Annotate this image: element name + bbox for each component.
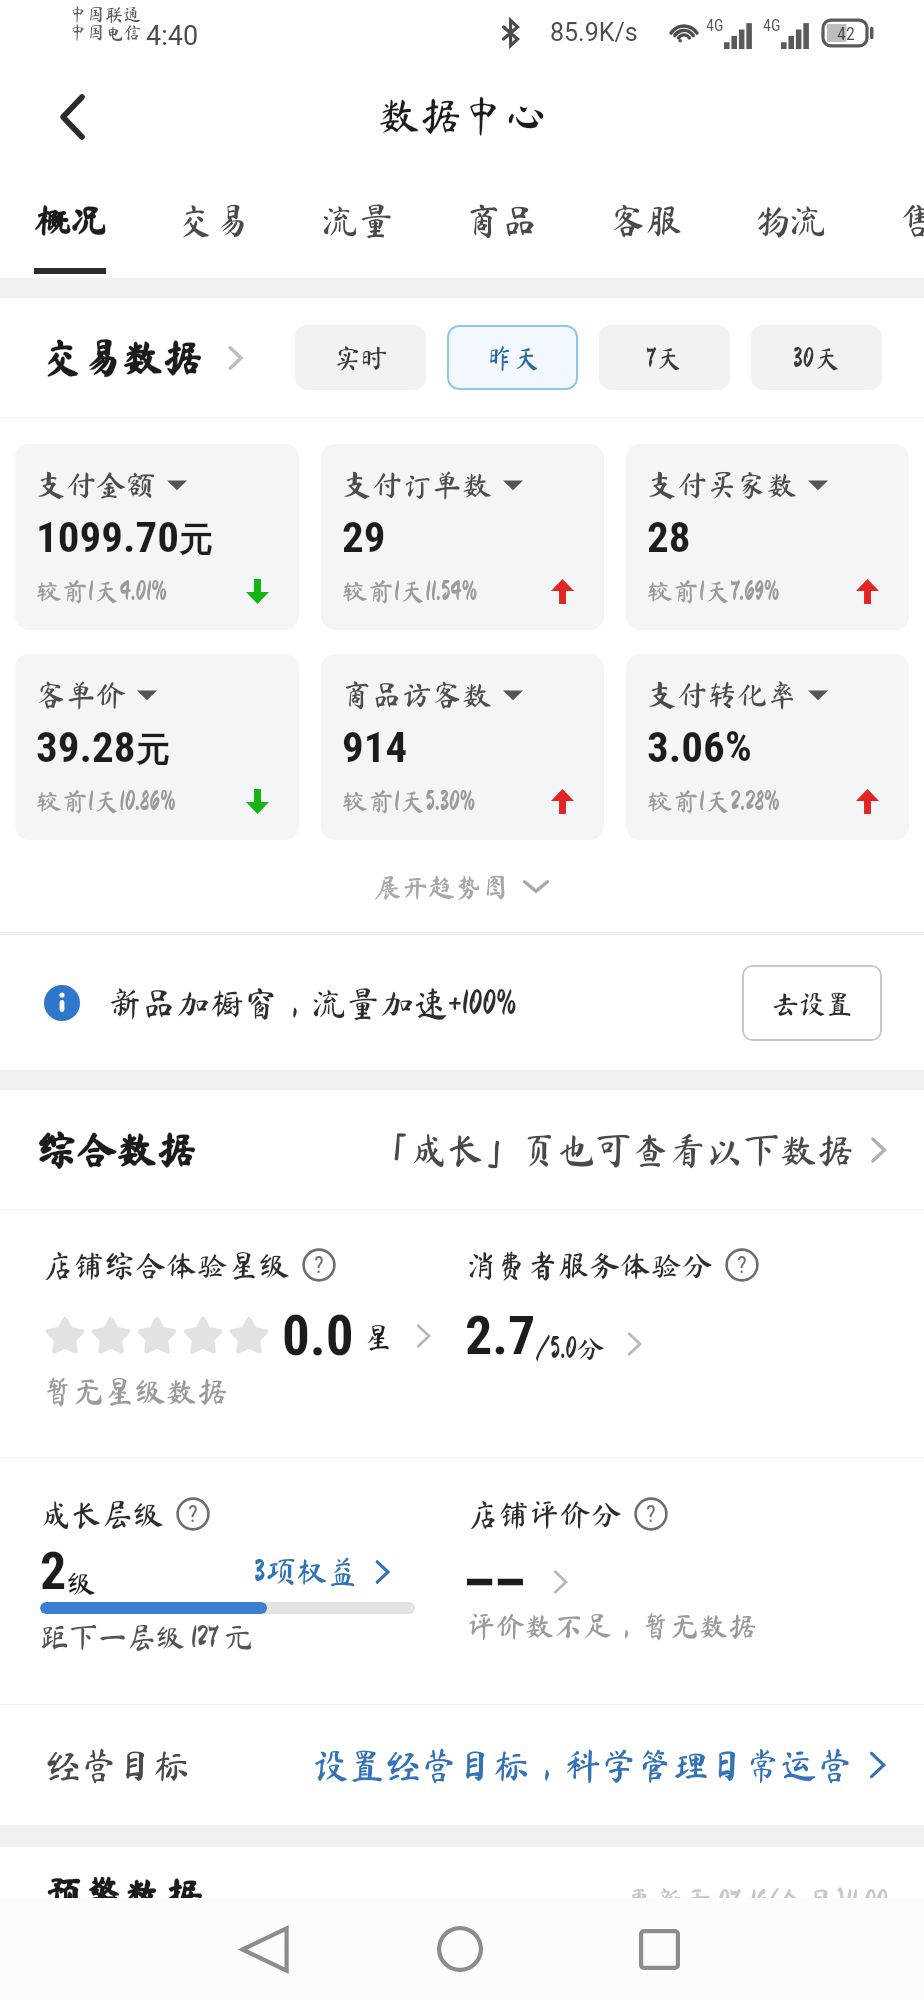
staticText: 客服 [610,202,683,238]
staticText: 暂无星级数据 [42,1376,228,1407]
button[interactable]: 7天 [599,325,730,390]
button[interactable]: 实时 [295,325,426,390]
staticText: 28 [647,512,691,562]
staticText: 成长层级 [40,1499,164,1530]
staticText: 2 [40,1541,67,1602]
staticText: 商品访客数 [342,680,492,710]
staticText: 较前1天2.28% [647,788,780,814]
staticText: 经营目标 [45,1747,190,1783]
button[interactable]: Help [725,1248,759,1282]
staticText: 914 [342,722,408,772]
staticText: 评价数不足，暂无数据 [467,1611,758,1640]
staticText: 元 [179,519,212,561]
button[interactable]: 交易数据 [42,338,250,378]
button[interactable]: 售 [898,168,924,278]
button[interactable]: 支付金额 [15,444,299,630]
staticText: 1099.70 [36,512,179,562]
staticText: 支付买家数 [647,470,797,500]
staticText: 展开趋势图 [374,873,509,900]
staticText: 去设置 [772,990,853,1017]
button[interactable]: 交易 [178,168,322,278]
staticText: 3项权益 [254,1556,359,1587]
staticText: 店铺综合体验星级 [42,1250,290,1281]
button[interactable]: Help [302,1248,336,1282]
button[interactable]: 概况 [34,168,178,278]
staticText: 级 [67,1568,97,1597]
staticText: 30天 [793,344,841,371]
staticText: /5.0分 [536,1334,605,1362]
staticText: 客单价 [36,680,126,710]
button[interactable]: Recents [605,1898,713,2000]
staticText: 较前1天10.86% [36,788,176,814]
button[interactable]: Help [176,1497,210,1531]
staticText: 商品 [466,202,539,238]
staticText: 物流 [754,202,827,238]
staticText: 7天 [646,344,683,371]
staticText: 4:40 [146,20,199,52]
staticText: 更新于 07-16(今日)11:00 [625,1886,888,1915]
staticText: 0.0 [282,1304,354,1368]
button[interactable]: Back [60,94,132,166]
button[interactable]: 昨天 [447,325,578,390]
button[interactable]: 商品 [466,168,610,278]
staticText: 4G [706,16,724,35]
button[interactable]: 流量 [322,168,466,278]
button[interactable]: Help [634,1497,668,1531]
staticText: 较前1天11.54% [342,578,477,604]
staticText: 中国电信 [69,23,141,41]
staticText: 支付订单数 [342,470,492,500]
button[interactable]: 客服 [610,168,754,278]
staticText: 售 [898,202,924,238]
staticText: 设置经营目标，科学管理日常运营 [313,1747,854,1783]
staticText: 4G [763,16,781,35]
button[interactable]: Back [210,1898,318,2000]
staticText: 较前1天5.30% [342,788,476,814]
staticText: ? [314,1252,324,1279]
button[interactable]: Home [406,1898,514,2000]
staticText: 39.28 [36,722,136,772]
staticText: 消费者服务体验分 [465,1250,713,1281]
staticText: 流量 [322,202,395,238]
button[interactable]: 支付转化率 [626,654,909,840]
staticText: 元 [136,729,169,771]
staticText: 较前1天4.01% [36,578,167,604]
staticText: 星 [364,1322,394,1351]
button[interactable]: 支付买家数 [626,444,909,630]
staticText: 交易数据 [42,338,202,378]
staticText: 3.06 [647,722,725,772]
button[interactable]: 30天 [751,325,882,390]
staticText: 综合数据 [36,1130,196,1170]
staticText: 店铺评价分 [467,1499,622,1530]
staticText: ? [188,1501,198,1528]
button[interactable]: 支付订单数 [321,444,604,630]
staticText: 较前1天7.69% [647,578,780,604]
button[interactable]: 物流 [754,168,898,278]
staticText: 29 [342,512,386,562]
button[interactable]: 3项权益 [254,1556,415,1587]
staticText: 42 [837,23,855,44]
staticText: 支付金额 [36,470,156,500]
staticText: 实时 [334,344,388,371]
staticText: 昨天 [486,344,540,371]
button[interactable]: 客单价 [15,654,299,840]
staticText: 2.7 [465,1304,536,1367]
button[interactable]: 经营目标 [0,1705,924,1825]
staticText: ? [646,1501,656,1528]
staticText: % [725,722,752,771]
staticText: 支付转化率 [647,680,797,710]
button[interactable]: 去设置 [742,965,882,1041]
button[interactable]: 商品访客数 [321,654,604,840]
button[interactable]: 展开趋势图 [15,840,909,932]
staticText: 85.9K/s [550,18,638,47]
button[interactable] [467,1567,575,1597]
staticText: 数据中心 [378,94,547,136]
button[interactable]: 2.7 [465,1304,649,1367]
staticText: 预警数据 [43,1876,203,1916]
button[interactable]: 0.0 [42,1304,438,1368]
staticText: ? [737,1252,747,1279]
button[interactable]: 「成长」页也可查看以下数据 [373,1131,894,1168]
staticText: 「成长」页也可查看以下数据 [373,1131,854,1168]
staticText: 交易 [178,202,251,238]
staticText: 中国联通 [69,5,141,23]
staticText: 新品加橱窗，流量加速+100% [108,986,517,1020]
